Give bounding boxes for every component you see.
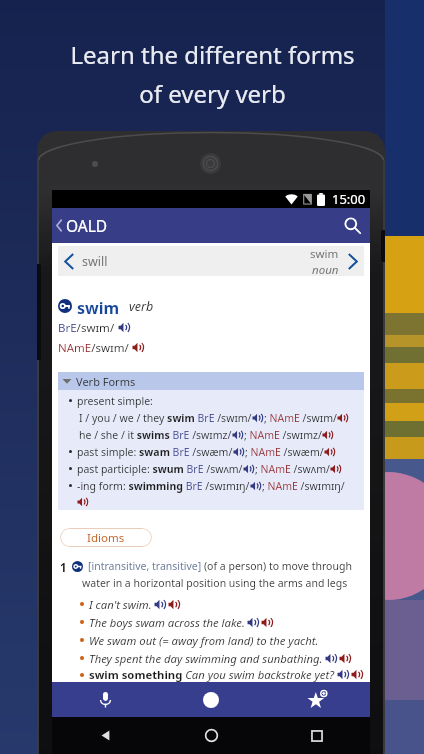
staticText: past participle: swum BrE /swʌm/ — [77, 462, 243, 476]
staticText: past simple: swam BrE /swæm/ — [77, 445, 233, 459]
staticText: ; NAmE /swɪm/ — [264, 411, 337, 425]
staticText: present simple: — [77, 394, 153, 408]
staticText: swill — [82, 253, 108, 270]
button[interactable]: swim something Can you swim backstroke y… — [80, 667, 364, 682]
staticText: swim something Can you swim backstroke y… — [89, 667, 335, 682]
button[interactable]: We swam out (= away from land) to the ya… — [80, 631, 319, 649]
staticText: [intransitive, transitive] (of a person)… — [82, 559, 362, 590]
staticText: noun — [312, 262, 339, 276]
button[interactable]: Idioms — [60, 528, 152, 547]
staticText: OALD — [66, 215, 108, 236]
staticText: ; NAmE /swɪmɪŋ/ — [262, 479, 345, 493]
button[interactable]: Verb Forms — [58, 372, 364, 390]
button[interactable]: I can't swim. — [80, 595, 181, 613]
staticText: I can't swim. — [89, 597, 152, 612]
button[interactable]: Recents — [264, 717, 370, 754]
staticText: We swam out (= away from land) to the ya… — [89, 633, 319, 648]
button[interactable]: The boys swam across the lake. — [80, 613, 274, 631]
staticText: of every verb — [139, 77, 286, 110]
staticText: verb — [129, 298, 154, 315]
staticText: Idioms — [87, 530, 125, 546]
staticText: The boys swam across the lake. — [89, 615, 245, 630]
staticText: swim — [310, 246, 339, 262]
staticText: NAmE/swɪm/ — [58, 340, 132, 355]
staticText: 15:00 — [332, 190, 366, 208]
staticText: ; NAmE /swʌm/ — [255, 462, 330, 476]
button[interactable]: They spent the day swimming and sunbathi… — [80, 649, 352, 667]
staticText: BrE/swɪm/ — [58, 320, 118, 335]
staticText: ; NAmE /swæm/ — [245, 445, 324, 459]
button[interactable]: Voice search — [52, 682, 158, 717]
button[interactable]: Add to favourites — [264, 682, 370, 717]
staticText: he / she / it swims BrE /swɪmz/ — [79, 428, 232, 442]
button[interactable]: OALD — [52, 208, 370, 243]
staticText: swim — [77, 297, 120, 315]
staticText: 1 — [60, 560, 67, 576]
staticText: Learn the different forms — [70, 38, 355, 71]
staticText: ; NAmE /swɪmz/ — [244, 428, 322, 442]
button[interactable]: Back — [52, 717, 158, 754]
staticText: They spent the day swimming and sunbathi… — [89, 651, 323, 666]
button[interactable]: swill — [58, 246, 364, 276]
staticText: I / you / we / they swim BrE /swɪm/ — [79, 411, 252, 425]
staticText: -ing form: swimming BrE /swɪmɪŋ/ — [77, 479, 250, 493]
button[interactable]: Record — [158, 682, 264, 717]
staticText: Verb Forms — [76, 374, 136, 389]
button[interactable]: Search — [335, 208, 370, 243]
button[interactable]: Home — [158, 717, 264, 754]
